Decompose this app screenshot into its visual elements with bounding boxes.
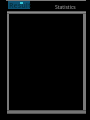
button[interactable]: Statistics	[55, 3, 84, 9]
button[interactable]: Results	[8, 1, 30, 9]
staticText: Statistics	[55, 4, 76, 10]
staticText: Results	[9, 1, 31, 9]
